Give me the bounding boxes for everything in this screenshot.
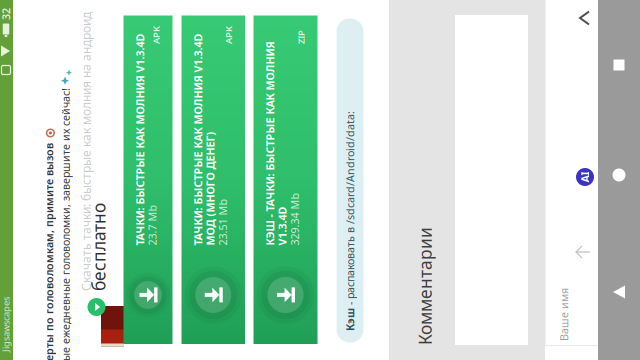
staticText: овые ежедневные головоломки, завершите и… [0,246,231,260]
staticText: Кэш [330,304,353,318]
button[interactable]: Send [0,0,640,360]
staticText: 23.51 Mb [73,88,120,103]
staticText: МОД (МНОГО ДЕНЕГ) [60,88,174,103]
button[interactable]: ксперты по головоломкам, примите вызов [0,0,640,360]
button[interactable]: APK [0,0,640,360]
button[interactable]: Back [0,0,640,360]
staticText: APK [198,8,216,20]
button[interactable]: Home [0,0,640,360]
staticText: Jigsawscapes [0,311,26,323]
button[interactable]: Stickers [0,0,640,360]
staticText: - распаковать в /sdcard/Android/data: [250,201,447,215]
staticText: Скачать тачки: быстрые как молния на анд… [0,118,200,134]
staticText: ксперты по головоломкам, примите вызов [0,301,214,315]
staticText: 32 [0,5,10,19]
button[interactable]: Collapse keyboard toolbar [0,0,640,360]
button[interactable]: AI assistant [0,0,640,360]
button[interactable]: APK [0,0,640,360]
staticText: ТАЧКИ: БЫСТРЫЕ КАК МОЛНИЯ V1.3.4D [0,88,202,103]
button[interactable]: ZIP [0,0,640,360]
staticText: Комментарии [365,273,483,296]
staticText: КЭШ - ТАЧКИ: БЫСТРЫЕ КАК МОЛНИЯ [120,88,324,103]
button[interactable]: Recents [0,0,640,360]
staticText: 329.34 Mb [145,88,198,103]
staticText: AI [579,170,590,184]
staticText: 23.7 Mb [2,88,43,103]
staticText: Ваше имя [529,299,582,313]
staticText: ТАЧКИ: БЫСТРЫЕ КАК МОЛНИЯ V1.3.4D [48,88,260,103]
staticText: V1.3.4D [132,88,171,103]
staticText: APK [126,8,144,20]
staticText: ZIP [271,8,285,20]
staticText: бесплатно [39,219,127,242]
